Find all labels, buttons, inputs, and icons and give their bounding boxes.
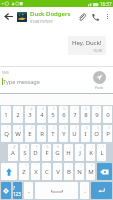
staticText: #	[42, 107, 44, 111]
staticText: C	[45, 168, 49, 176]
staticText: &	[57, 145, 60, 149]
button[interactable]: .	[80, 182, 89, 199]
staticText: ?123	[13, 185, 22, 197]
staticText: Hey, Duck!	[72, 39, 102, 47]
staticText: !	[81, 164, 82, 168]
staticText: 6	[62, 111, 66, 119]
staticText: 3	[28, 111, 32, 119]
staticText: 7	[73, 111, 77, 119]
staticText: P	[106, 130, 110, 138]
staticText: @	[30, 107, 33, 111]
button[interactable]: #	[20, 144, 29, 161]
button[interactable]: 7	[70, 125, 79, 142]
staticText: Type message	[3, 78, 40, 85]
button[interactable]: Send	[93, 71, 106, 84]
button[interactable]: ;	[64, 163, 73, 180]
staticText: S	[23, 149, 27, 157]
button[interactable]: *	[92, 106, 101, 123]
staticText: @	[13, 145, 16, 149]
staticText: K	[89, 149, 93, 157]
button[interactable]: ,	[24, 182, 33, 199]
button[interactable]: +	[75, 144, 84, 161]
staticText: I	[84, 130, 87, 138]
button[interactable]: Attach	[75, 7, 88, 26]
button[interactable]: #	[37, 106, 46, 123]
staticText: Z	[22, 168, 26, 176]
button[interactable]: ^	[70, 106, 79, 123]
staticText: 9748797597	[30, 19, 53, 24]
button[interactable]: !	[75, 163, 84, 180]
staticText: 1	[4, 111, 8, 119]
button[interactable]: %	[42, 144, 51, 161]
staticText: 5	[53, 126, 55, 130]
button[interactable]: $	[48, 106, 57, 123]
button[interactable]: More options	[101, 7, 113, 26]
button[interactable]: 5	[48, 125, 57, 142]
staticText: .	[84, 187, 86, 195]
staticText: ^	[75, 107, 77, 111]
staticText: 0	[108, 126, 110, 130]
button[interactable]: %	[59, 106, 68, 123]
button[interactable]: &	[53, 144, 62, 161]
button[interactable]: &	[81, 106, 90, 123]
button[interactable]: Call	[88, 7, 101, 26]
button[interactable]: -	[64, 144, 73, 161]
button[interactable]: !	[13, 106, 23, 123]
button[interactable]: Backspace	[97, 163, 112, 180]
staticText: SMS	[2, 70, 10, 75]
button[interactable]: Space	[35, 182, 78, 199]
staticText: $	[53, 107, 55, 111]
staticText: M	[88, 168, 94, 176]
staticText: F	[45, 149, 49, 157]
button[interactable]: )	[97, 144, 106, 161]
staticText: T	[51, 130, 55, 138]
staticText: 8	[84, 111, 88, 119]
button[interactable]: ?	[86, 163, 95, 180]
button[interactable]: 6	[59, 125, 68, 142]
staticText: J	[79, 149, 81, 157]
button[interactable]: 4	[37, 125, 46, 142]
button[interactable]: ~	[1, 106, 11, 123]
button[interactable]: "	[31, 163, 40, 180]
button[interactable]: 2	[13, 125, 23, 142]
button[interactable]: Enter	[91, 182, 112, 199]
staticText: $	[36, 145, 38, 149]
staticText: N	[77, 168, 82, 176]
staticText: 9	[95, 111, 99, 119]
button[interactable]: @	[25, 106, 35, 123]
staticText: Push	[95, 85, 104, 90]
staticText: Duck Dodgers	[30, 10, 71, 18]
button[interactable]: 8	[81, 125, 90, 142]
button[interactable]: 0	[103, 125, 112, 142]
staticText: 4	[42, 126, 44, 130]
staticText: 16:38	[93, 48, 102, 53]
button[interactable]: Symbols	[13, 182, 22, 199]
button[interactable]: Shift	[1, 163, 17, 180]
staticText: -	[70, 145, 71, 149]
button[interactable]: Change language	[1, 182, 11, 199]
staticText: E	[28, 130, 32, 138]
button[interactable]: 9	[92, 125, 101, 142]
staticText: A	[11, 149, 15, 157]
button[interactable]: *	[19, 163, 29, 180]
staticText: 6	[64, 126, 66, 130]
button[interactable]: :	[53, 163, 62, 180]
staticText: 16:37	[100, 1, 112, 7]
button[interactable]: 3	[25, 125, 35, 142]
button[interactable]: 1	[1, 125, 11, 142]
staticText: 9	[97, 126, 99, 130]
staticText: )	[103, 145, 104, 149]
staticText: ,	[28, 187, 30, 195]
button[interactable]: '	[42, 163, 51, 180]
button[interactable]: @	[8, 144, 18, 161]
staticText: ;	[70, 164, 71, 168]
button[interactable]: $	[31, 144, 40, 161]
staticText: Y	[62, 130, 66, 138]
button[interactable]: (	[103, 106, 112, 123]
staticText: 4	[40, 111, 44, 119]
staticText: %	[63, 107, 66, 111]
button[interactable]: (	[86, 144, 95, 161]
staticText: ~	[7, 107, 9, 111]
button[interactable]: Back	[0, 7, 17, 26]
staticText: X	[34, 168, 38, 176]
